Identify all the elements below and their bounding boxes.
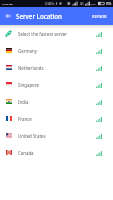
staticText: Singapore (18, 82, 39, 88)
staticText: Server Location (16, 12, 62, 20)
button[interactable]: REPAIR (86, 10, 113, 23)
button[interactable]: Back (0, 7, 16, 25)
staticText: Select the fastest server (18, 31, 68, 37)
staticText: Netherlands (18, 65, 44, 71)
button[interactable]: Canada (0, 144, 113, 161)
button[interactable]: Select the fastest server (0, 25, 113, 42)
button[interactable]: United States (0, 127, 113, 144)
button[interactable]: Singapore (0, 76, 113, 93)
staticText: Canada (18, 150, 34, 156)
staticText: 91% (106, 2, 112, 6)
staticText: 4G (80, 2, 84, 6)
button[interactable]: Netherlands (0, 59, 113, 76)
button[interactable]: France (0, 110, 113, 127)
button[interactable]: India (0, 93, 113, 110)
staticText: 0.34K/s (45, 2, 55, 6)
staticText: REPAIR (92, 14, 107, 19)
staticText: United States (18, 133, 46, 139)
staticText: VoLTE (89, 2, 96, 5)
staticText: 11:17 PM (2, 2, 13, 5)
staticText: India (18, 99, 29, 105)
staticText: France (18, 116, 32, 122)
button[interactable]: Germany (0, 42, 113, 59)
staticText: Germany (18, 48, 38, 54)
